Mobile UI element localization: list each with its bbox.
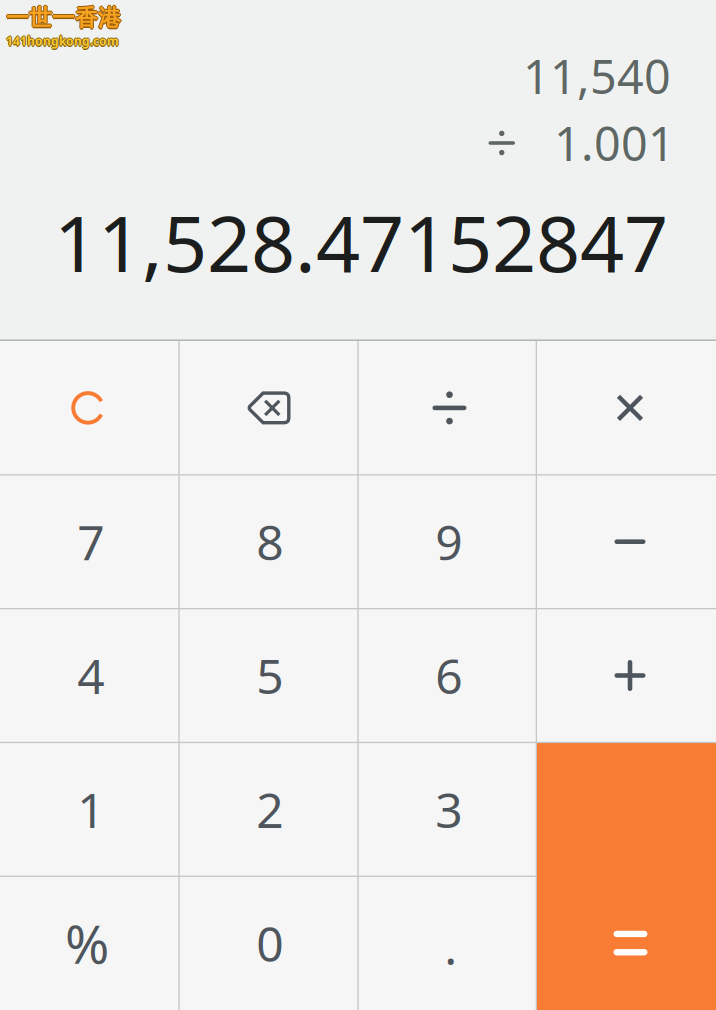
staticText: 5 — [256, 644, 283, 707]
staticText: 一世一香港 — [6, 3, 121, 31]
button[interactable]: 4 — [0, 609, 179, 742]
staticText: 1 — [77, 777, 104, 841]
staticText: 6 — [435, 644, 462, 707]
button[interactable]: 3 — [358, 742, 537, 876]
staticText: 4 — [77, 644, 104, 707]
button[interactable]: Divide — [358, 341, 537, 475]
staticText: 141hongkong.com — [5, 33, 118, 49]
button[interactable]: 8 — [179, 475, 358, 609]
button[interactable]: 9 — [358, 475, 537, 609]
staticText: 一世一香港 — [5, 4, 120, 32]
staticText: 2 — [256, 777, 283, 841]
staticText: 141hongkong.com — [7, 33, 120, 49]
staticText: 一世一香港 — [7, 4, 122, 32]
button[interactable]: Multiply — [537, 341, 716, 475]
staticText: 141hongkong.com — [6, 33, 119, 49]
button[interactable]: Plus — [537, 609, 716, 742]
button[interactable]: Equals — [537, 742, 716, 1010]
staticText: 11,528.47152847 — [54, 191, 668, 293]
staticText: . — [444, 914, 457, 978]
staticText: % — [65, 908, 109, 978]
staticText: 7 — [77, 510, 104, 573]
button[interactable]: 1 — [0, 742, 179, 876]
staticText: 141hongkong.com — [6, 32, 119, 48]
button[interactable]: 7 — [0, 475, 179, 609]
button[interactable]: . — [358, 876, 537, 1010]
staticText: 141hongkong.com — [6, 34, 119, 50]
button[interactable]: Backspace — [179, 341, 358, 475]
button[interactable]: 2 — [179, 742, 358, 876]
staticText: 11,540 — [523, 45, 671, 107]
staticText: 9 — [435, 510, 462, 573]
staticText: 0 — [256, 911, 283, 975]
staticText: 一世一香港 — [6, 6, 121, 33]
staticText: 一世一香港 — [6, 4, 121, 32]
button[interactable]: 6 — [358, 609, 537, 742]
staticText: 8 — [256, 510, 283, 573]
button[interactable]: 0 — [179, 876, 358, 1010]
button[interactable]: % — [0, 876, 179, 1010]
staticText: 3 — [435, 777, 462, 841]
button[interactable]: Clear — [0, 341, 179, 475]
staticText: 1.001 — [554, 112, 675, 174]
button[interactable]: Minus — [537, 475, 716, 609]
button[interactable]: 5 — [179, 609, 358, 742]
